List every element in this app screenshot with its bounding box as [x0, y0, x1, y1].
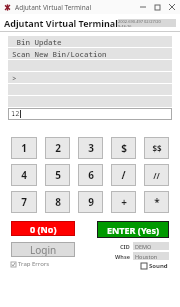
button[interactable]: 12: [11, 108, 172, 120]
staticText: *: [154, 195, 160, 209]
staticText: Login: [30, 243, 57, 257]
staticText: 4: [21, 168, 27, 182]
staticText: Adjutant Virtual Terminal: [15, 3, 92, 12]
staticText: 5: [55, 168, 61, 182]
staticText: 12: [11, 109, 20, 119]
button[interactable]: +: [111, 191, 136, 213]
button[interactable]: Sound: [141, 262, 169, 270]
staticText: +: [121, 195, 127, 209]
staticText: 0 (No): [30, 223, 57, 235]
button[interactable]: 1: [11, 137, 37, 159]
staticText: Adjutant Virtual Terminal: [4, 17, 118, 29]
staticText: Bin Update: [12, 37, 62, 47]
staticText: >: [12, 73, 17, 83]
button[interactable]: 2: [45, 137, 70, 159]
staticText: ENTER (Yes): [107, 224, 160, 236]
staticText: Sound: [149, 262, 168, 270]
button[interactable]: *: [144, 191, 169, 213]
button[interactable]: //: [144, 164, 169, 186]
button[interactable]: $$: [144, 137, 169, 159]
staticText: 7: [21, 195, 27, 209]
button[interactable]: Close: [164, 0, 180, 14]
button[interactable]: Minimize: [136, 0, 150, 14]
button[interactable]: 3: [78, 137, 103, 159]
button[interactable]: Login: [11, 242, 75, 257]
staticText: /: [121, 168, 126, 182]
button[interactable]: Trap Errors: [11, 260, 50, 268]
button[interactable]: 7: [11, 191, 37, 213]
button[interactable]: Maximize: [150, 0, 164, 14]
staticText: Trap Errors: [18, 260, 50, 268]
staticText: DEMO: [135, 243, 152, 250]
staticText: $$: [152, 143, 162, 154]
staticText: 6: [88, 168, 94, 182]
staticText: 1: [21, 141, 27, 155]
staticText: Houston: [135, 253, 158, 260]
staticText: 8: [55, 195, 61, 209]
staticText: //: [153, 170, 160, 181]
button[interactable]: ENTER (Yes): [97, 221, 169, 238]
button[interactable]: 0 (No): [11, 221, 75, 236]
staticText: Scan New Bin/Location: [12, 49, 107, 59]
staticText: Whse: [115, 253, 130, 260]
button[interactable]: 4: [11, 164, 37, 186]
staticText: CID: [120, 243, 130, 250]
staticText: $: [121, 141, 127, 155]
button[interactable]: 9: [78, 191, 103, 213]
button[interactable]: 8: [45, 191, 70, 213]
button[interactable]: /: [111, 164, 136, 186]
staticText: 2: [55, 141, 61, 155]
button[interactable]: $: [111, 137, 136, 159]
button[interactable]: 6: [78, 164, 103, 186]
staticText: 3: [88, 141, 94, 155]
staticText: 9: [88, 195, 94, 209]
staticText: 2002.690.497 02/27/20 9:46:26: [118, 19, 176, 27]
button[interactable]: 5: [45, 164, 70, 186]
